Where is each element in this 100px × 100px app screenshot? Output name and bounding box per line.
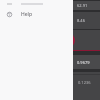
staticText: 0.1236	[78, 80, 91, 85]
button[interactable]: 62.91	[0, 1, 100, 10]
button[interactable]: 0.1236	[0, 72, 100, 100]
staticText: 0.9679	[77, 60, 90, 65]
button[interactable]: 8.46	[0, 12, 100, 29]
staticText: 8.46	[77, 18, 85, 23]
button[interactable]: Record	[60, 33, 75, 48]
button[interactable]	[0, 0, 73, 5]
button[interactable]: Help	[0, 9, 73, 19]
staticText: 62.91	[77, 3, 88, 8]
staticText: Help	[21, 11, 33, 18]
button[interactable]: 0.9679	[0, 55, 100, 69]
